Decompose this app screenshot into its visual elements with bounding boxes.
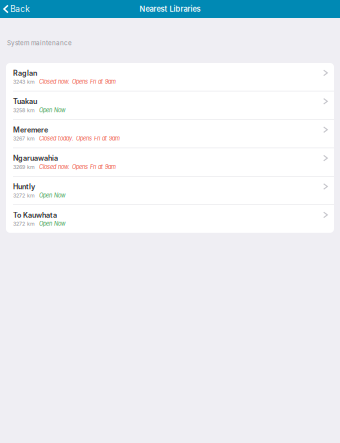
button[interactable]: Back — [0, 1, 35, 17]
staticText: 3272 km — [13, 221, 35, 227]
button[interactable]: Raglan — [6, 63, 334, 91]
staticText: Open Now — [39, 192, 66, 199]
staticText: Meremere — [13, 125, 48, 134]
staticText: 3272 km — [13, 192, 35, 199]
button[interactable]: To Kauwhata — [6, 205, 334, 233]
staticText: Raglan — [13, 69, 37, 77]
staticText: Closed today. Opens Fri at 9am — [39, 135, 120, 142]
button[interactable]: Ngaruawahia — [6, 148, 334, 177]
button[interactable]: Tuakau — [6, 91, 334, 120]
staticText: 3269 km — [13, 164, 35, 170]
staticText: 3258 km — [13, 107, 35, 113]
staticText: Open Now — [39, 220, 66, 227]
staticText: To Kauwhata — [13, 211, 57, 219]
staticText: System maintenance — [7, 39, 72, 47]
staticText: 3267 km — [13, 135, 35, 142]
staticText: Tuakau — [13, 97, 37, 106]
button[interactable]: Huntly — [6, 177, 334, 205]
staticText: Huntly — [13, 182, 35, 191]
staticText: Ngaruawahia — [13, 154, 58, 163]
staticText: Open Now — [39, 107, 66, 114]
staticText: Nearest Libraries — [139, 4, 200, 13]
staticText: 3243 km — [13, 79, 35, 85]
staticText: Closed now. Opens Fri at 9am — [39, 164, 116, 170]
button[interactable]: Meremere — [6, 120, 334, 148]
staticText: Back — [10, 4, 30, 14]
staticText: Closed now. Opens Fri at 9am — [39, 78, 116, 85]
